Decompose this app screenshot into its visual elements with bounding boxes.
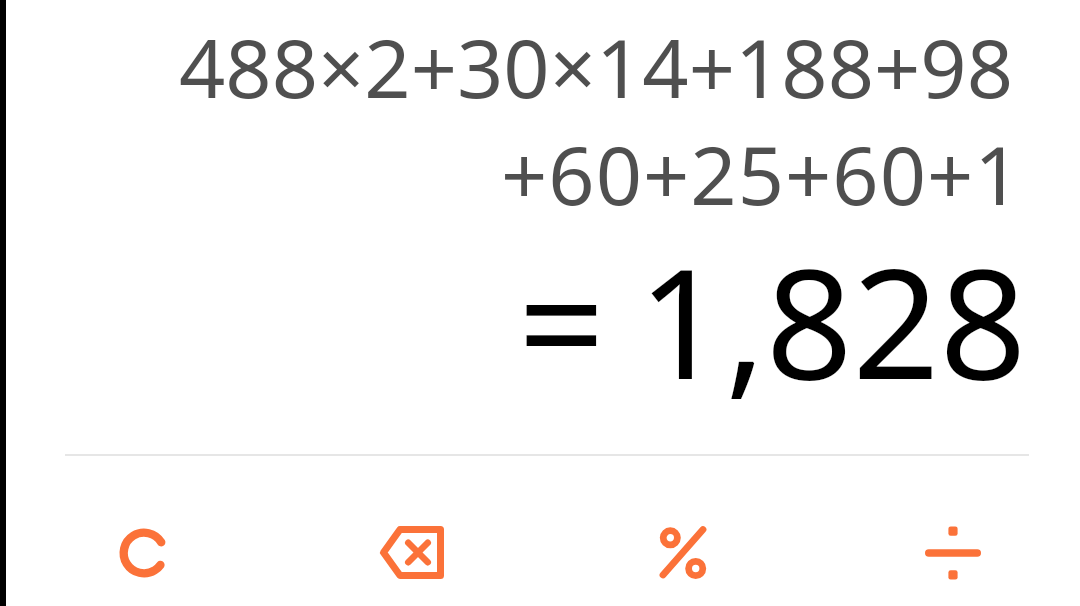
staticText: 1,828 — [638, 217, 1027, 424]
button[interactable]: Divide — [810, 454, 1080, 606]
staticText: +60+25+60+1 — [501, 118, 1022, 228]
button[interactable]: Percent — [540, 454, 810, 606]
button[interactable]: Backspace — [270, 454, 540, 606]
staticText: = — [518, 217, 605, 424]
staticText: 488×2+30×14+188+98 — [179, 11, 1013, 121]
button[interactable]: Clear — [0, 454, 270, 606]
